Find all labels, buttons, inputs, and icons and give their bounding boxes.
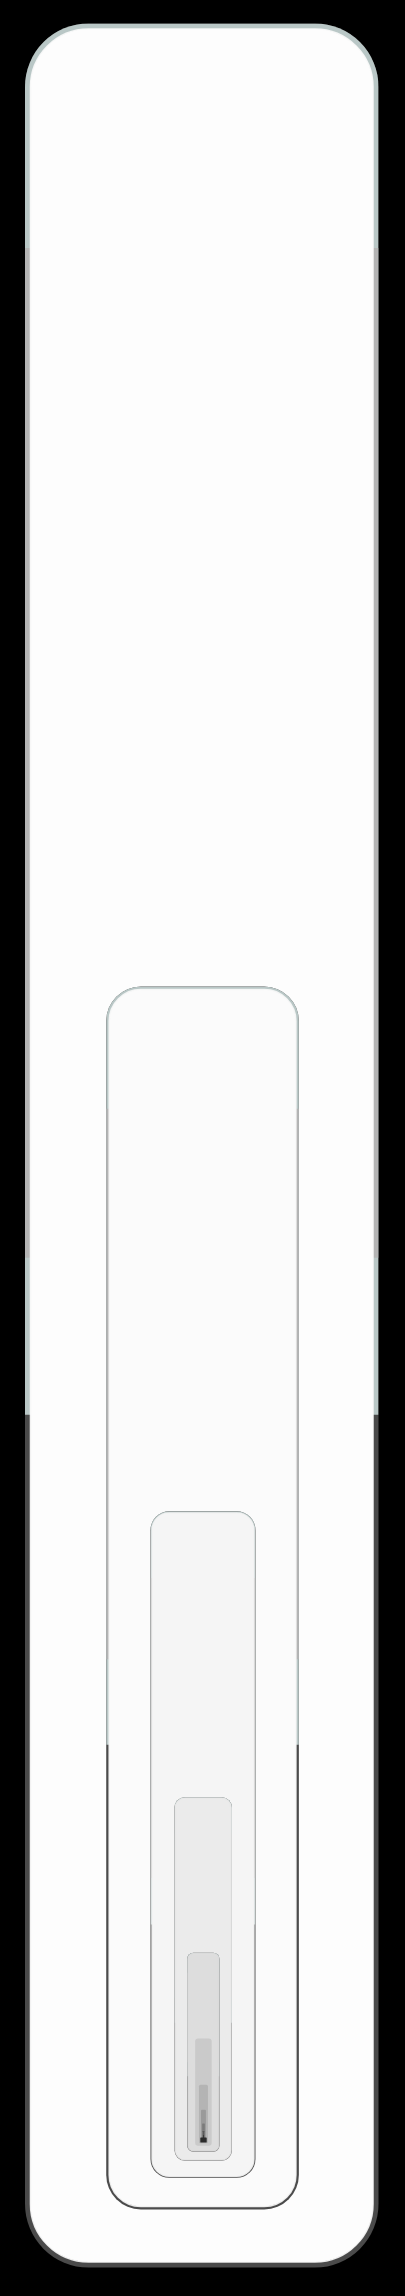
button[interactable]: Recursive screen preview [0, 0, 405, 2296]
